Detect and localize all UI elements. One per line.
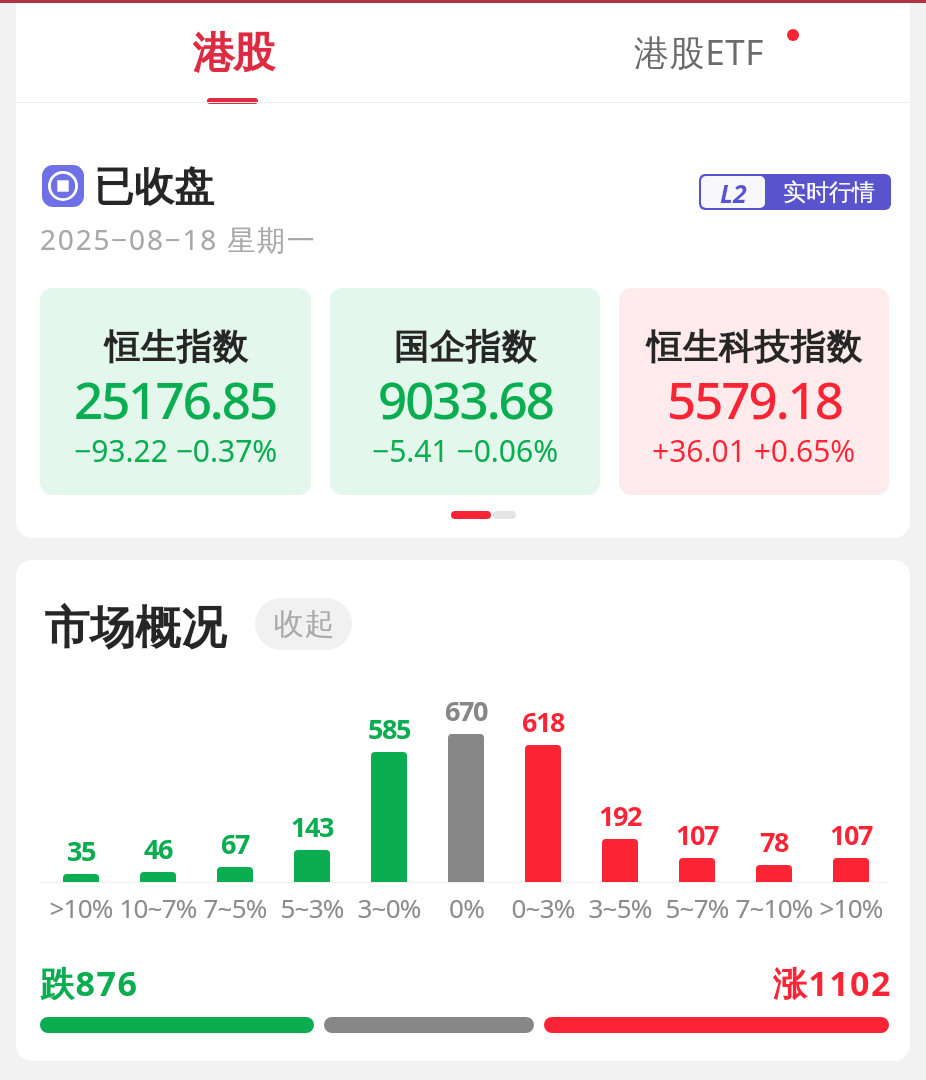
staticText: 收起: [273, 605, 335, 643]
staticText: >10%: [49, 890, 113, 925]
staticText: 3~5%: [588, 890, 652, 925]
staticText: 10~7%: [119, 890, 197, 925]
button[interactable]: 国企指数: [330, 288, 600, 495]
staticText: 7~10%: [735, 890, 813, 925]
staticText: 107: [676, 816, 718, 853]
staticText: 143: [291, 808, 333, 845]
staticText: 港股ETF: [634, 28, 765, 76]
staticText: 恒生指数: [104, 325, 248, 369]
staticText: 107: [830, 816, 872, 853]
staticText: L2: [720, 176, 747, 208]
staticText: 已收盘: [94, 161, 214, 211]
button[interactable]: 收起: [255, 598, 352, 650]
staticText: 0%: [449, 890, 484, 925]
staticText: 5~3%: [280, 890, 344, 925]
other: Market closed: [42, 165, 84, 207]
staticText: 3~0%: [357, 890, 421, 925]
staticText: 港股: [193, 27, 274, 80]
staticText: 恒生科技指数: [646, 325, 862, 369]
staticText: >10%: [819, 890, 883, 925]
button[interactable]: 恒生指数: [40, 288, 311, 495]
staticText: 5~7%: [665, 890, 729, 925]
staticText: 192: [599, 797, 641, 834]
staticText: 5579.18: [667, 364, 842, 433]
staticText: 跌876: [40, 960, 139, 1006]
staticText: 2025−08−18 星期一: [40, 220, 317, 258]
staticText: 涨1102: [732, 960, 892, 1006]
button[interactable]: 港股ETF: [617, 3, 782, 100]
staticText: 7~5%: [203, 890, 267, 925]
staticText: +36.01 +0.65%: [652, 430, 856, 471]
button[interactable]: L2: [699, 174, 891, 210]
staticText: 9033.68: [378, 364, 553, 433]
staticText: 78: [760, 823, 788, 860]
button[interactable]: 港股: [158, 5, 308, 102]
staticText: 67: [221, 825, 249, 862]
staticText: 585: [368, 710, 410, 747]
staticText: 25176.85: [74, 364, 277, 433]
staticText: −93.22 −0.37%: [74, 430, 278, 471]
staticText: 46: [144, 830, 172, 867]
staticText: 618: [522, 703, 564, 740]
button[interactable]: 恒生科技指数: [619, 288, 889, 495]
staticText: 35: [67, 832, 95, 869]
staticText: 实时行情: [783, 178, 875, 207]
staticText: 市场概况: [44, 600, 226, 657]
staticText: 0~3%: [511, 890, 575, 925]
staticText: 670: [445, 692, 487, 729]
staticText: 国企指数: [393, 325, 537, 369]
staticText: −5.41 −0.06%: [372, 430, 559, 471]
